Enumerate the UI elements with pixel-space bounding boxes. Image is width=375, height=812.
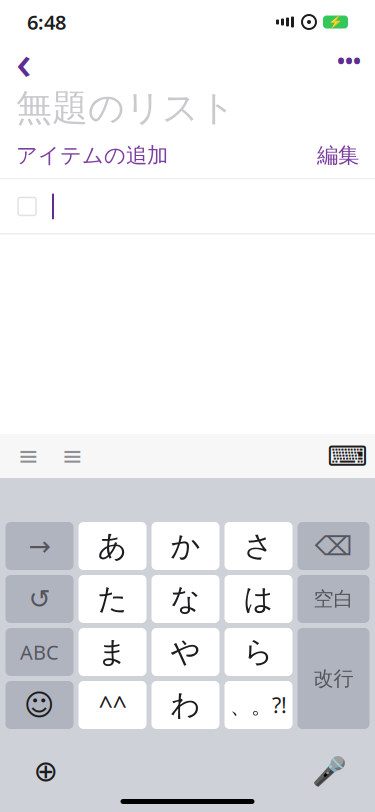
staticText: ら <box>243 634 273 670</box>
staticText: ‹ <box>16 29 32 93</box>
staticText: や <box>170 634 200 670</box>
button[interactable]: Next keyboard <box>24 749 68 793</box>
staticText: ABC <box>20 639 59 665</box>
staticText: 6:48 <box>27 9 66 35</box>
staticText: わ <box>170 687 200 723</box>
button[interactable]: Indent <box>50 435 94 477</box>
staticText: ⌫ <box>314 531 352 561</box>
button[interactable]: Hide keyboard <box>325 435 369 477</box>
button[interactable]: アイテムの追加 <box>16 142 168 168</box>
staticText: は <box>243 581 273 617</box>
button[interactable]: な <box>151 575 219 623</box>
button[interactable]: は <box>224 575 292 623</box>
staticText: な <box>170 581 200 617</box>
button[interactable]: ⌫ <box>297 522 369 570</box>
staticText: ↺ <box>28 584 50 614</box>
staticText: 無題のリスト <box>16 86 236 130</box>
staticText: ••• <box>337 47 361 75</box>
button[interactable]: ま <box>78 628 146 676</box>
button[interactable]: ら <box>224 628 292 676</box>
staticText: あ <box>97 528 127 564</box>
button[interactable]: Dictation <box>307 749 351 793</box>
staticText: ⌨ <box>327 440 367 472</box>
button[interactable]: や <box>151 628 219 676</box>
staticText: 編集 <box>317 142 359 168</box>
button[interactable]: ^^ <box>78 681 146 729</box>
staticText: ^^ <box>98 688 126 722</box>
staticText: た <box>97 581 127 617</box>
button[interactable]: さ <box>224 522 292 570</box>
staticText: アイテムの追加 <box>16 142 168 168</box>
button[interactable]: わ <box>151 681 219 729</box>
button[interactable]: 改行 <box>297 628 369 729</box>
button[interactable]: More options <box>327 44 371 78</box>
staticText: ⊕ <box>33 754 58 788</box>
button[interactable]: → <box>5 522 73 570</box>
button[interactable]: ☺ <box>5 681 73 729</box>
staticText: ≡ <box>61 442 82 470</box>
button[interactable]: ABC <box>5 628 73 676</box>
button[interactable]: か <box>151 522 219 570</box>
staticText: ま <box>97 634 127 670</box>
staticText: → <box>28 531 50 561</box>
button[interactable]: 空白 <box>297 575 369 623</box>
button[interactable]: ↺ <box>5 575 73 623</box>
staticText: 改行 <box>313 666 353 691</box>
staticText: 空白 <box>313 587 353 611</box>
button[interactable]: Outdent <box>6 435 50 477</box>
button[interactable]: あ <box>78 522 146 570</box>
staticText: 、。?! <box>230 691 287 719</box>
staticText: ⚡ <box>328 15 343 29</box>
button[interactable]: た <box>78 575 146 623</box>
staticText: ≡ <box>17 442 38 470</box>
button[interactable]: 編集 <box>317 142 359 168</box>
button[interactable] <box>0 179 375 233</box>
staticText: ☺ <box>24 688 55 722</box>
staticText: 🎤 <box>311 755 346 787</box>
staticText: か <box>170 528 200 564</box>
staticText: さ <box>243 528 273 564</box>
button[interactable]: 、。?! <box>224 681 292 729</box>
button[interactable]: Back <box>4 44 44 78</box>
